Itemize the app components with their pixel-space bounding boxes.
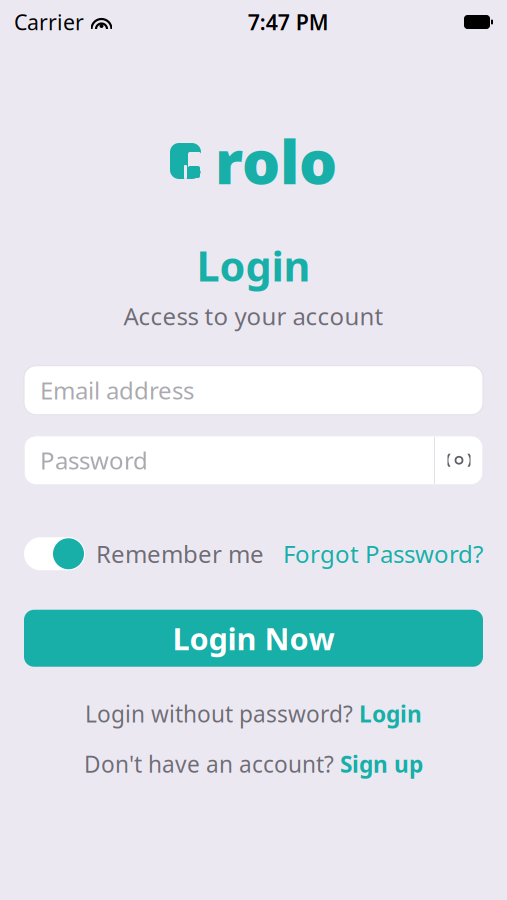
staticText: Email address [40,374,194,406]
staticText: Don't have an account? [84,749,334,779]
staticText: Carrier [14,8,84,36]
button[interactable]: Show password [434,436,483,485]
staticText: Login [196,238,310,293]
staticText: Sign up [340,749,423,779]
staticText: Password [40,444,148,476]
staticText: Login [359,699,422,729]
staticText: Remember me [96,538,264,570]
button[interactable]: Forgot Password? [283,538,483,570]
staticText: Login Now [172,618,334,659]
staticText: Forgot Password? [283,538,483,570]
button[interactable]: Login without password? [85,699,422,729]
staticText: Access to your account [123,300,383,332]
staticText: rolo [215,121,337,201]
button[interactable]: Login Now [24,610,483,667]
button[interactable]: Email address [24,366,483,415]
button[interactable]: Don't have an account? [84,749,423,779]
button[interactable]: Remember me [24,537,264,570]
staticText: Login without password? [85,699,353,729]
staticText: 7:47 PM [248,8,329,36]
